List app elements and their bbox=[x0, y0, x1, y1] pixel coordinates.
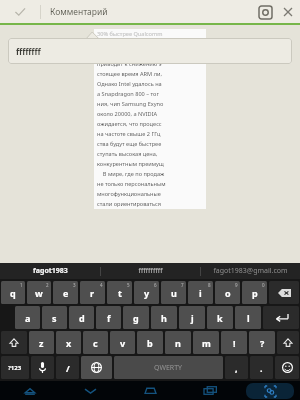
button[interactable]: fagot1983 bbox=[0, 263, 100, 279]
button[interactable]: Key bbox=[275, 356, 299, 379]
staticText: f bbox=[107, 312, 111, 324]
staticText: около 20000, a NVIDIA bbox=[97, 110, 159, 118]
staticText: fagot1983 bbox=[33, 266, 68, 276]
staticText: 8 bbox=[208, 282, 211, 288]
button[interactable]: u bbox=[161, 281, 186, 304]
staticText: e bbox=[63, 287, 69, 299]
button[interactable]: r bbox=[80, 281, 105, 304]
button[interactable]: , bbox=[225, 356, 248, 379]
button[interactable]: a bbox=[15, 306, 40, 329]
staticText: 5 bbox=[127, 282, 130, 288]
staticText: стоящее время ARM ли, bbox=[97, 70, 162, 78]
staticText: o bbox=[225, 287, 231, 299]
button[interactable]: f bbox=[96, 306, 121, 329]
staticText: y bbox=[144, 287, 150, 299]
button[interactable]: ffffffffff bbox=[101, 263, 200, 279]
button[interactable]: z bbox=[29, 331, 54, 354]
button[interactable]: Key bbox=[81, 356, 112, 379]
staticText: / bbox=[66, 362, 70, 374]
button[interactable]: m bbox=[193, 331, 219, 354]
staticText: , bbox=[235, 362, 238, 374]
button[interactable]: Home bbox=[120, 381, 180, 400]
button[interactable]: q bbox=[1, 281, 25, 304]
staticText: m bbox=[202, 337, 211, 349]
staticText: ния, чип Samsung Exyno bbox=[97, 100, 164, 108]
staticText: многофункциональные bbox=[97, 190, 163, 198]
staticText: p bbox=[252, 287, 258, 299]
staticText: u bbox=[171, 287, 177, 299]
button[interactable]: i bbox=[188, 281, 213, 304]
button[interactable]: Key bbox=[31, 356, 54, 379]
button[interactable]: ? bbox=[249, 331, 275, 354]
button[interactable]: o bbox=[215, 281, 240, 304]
staticText: 30% быстрее Qualcomm bbox=[97, 30, 163, 38]
button[interactable]: k bbox=[207, 306, 233, 329]
button[interactable]: Key bbox=[277, 331, 299, 354]
staticText: ?123 bbox=[8, 364, 22, 372]
button[interactable]: j bbox=[179, 306, 205, 329]
button[interactable]: . bbox=[250, 356, 273, 379]
button[interactable]: v bbox=[110, 331, 135, 354]
button[interactable]: l bbox=[235, 306, 261, 329]
staticText: 2 bbox=[46, 282, 49, 288]
staticText: приводит к снижению э bbox=[97, 60, 162, 68]
button[interactable]: Expand bbox=[240, 381, 300, 400]
staticText: a Snapdragon 800 – тог bbox=[97, 90, 159, 98]
staticText: 6 bbox=[154, 282, 157, 288]
staticText: ffffffff bbox=[16, 46, 41, 57]
staticText: b bbox=[147, 337, 153, 349]
button[interactable]: y bbox=[134, 281, 159, 304]
staticText: j bbox=[191, 312, 194, 324]
button[interactable]: n bbox=[165, 331, 191, 354]
button[interactable]: e bbox=[53, 281, 78, 304]
button[interactable]: p bbox=[242, 281, 267, 304]
button[interactable]: Hide keyboard bbox=[0, 381, 60, 400]
staticText: k bbox=[217, 312, 223, 324]
button[interactable]: Recents bbox=[180, 381, 240, 400]
staticText: a bbox=[25, 312, 31, 324]
button[interactable]: Key bbox=[263, 306, 299, 329]
staticText: . bbox=[260, 362, 263, 374]
button[interactable]: x bbox=[56, 331, 81, 354]
staticText: Однако Intel удалось на bbox=[97, 80, 162, 88]
staticText: 1 bbox=[20, 282, 23, 288]
button[interactable]: w bbox=[27, 281, 51, 304]
button[interactable]: g bbox=[123, 306, 149, 329]
staticText: fagot1983@gmail.com bbox=[213, 266, 288, 276]
staticText: конкурентным преимущ bbox=[97, 160, 164, 168]
button[interactable]: / bbox=[56, 356, 79, 379]
button[interactable]: d bbox=[69, 306, 94, 329]
staticText: 0 bbox=[262, 282, 265, 288]
staticText: ffffffffff bbox=[138, 266, 163, 276]
button[interactable]: Back bbox=[60, 381, 120, 400]
staticText: 7 bbox=[181, 282, 184, 288]
staticText: z bbox=[39, 337, 44, 349]
button[interactable]: fagot1983@gmail.com bbox=[201, 263, 300, 279]
button[interactable]: Camera bbox=[254, 1, 276, 23]
button[interactable]: c bbox=[83, 331, 108, 354]
button[interactable]: t bbox=[107, 281, 132, 304]
staticText: ? bbox=[260, 337, 265, 349]
button[interactable]: Done bbox=[0, 0, 40, 23]
staticText: QWERTY bbox=[154, 363, 183, 373]
staticText: s bbox=[52, 312, 57, 324]
staticText: l bbox=[247, 312, 250, 324]
button[interactable]: b bbox=[137, 331, 163, 354]
button[interactable]: s bbox=[42, 306, 67, 329]
staticText: 3 bbox=[73, 282, 76, 288]
staticText: c bbox=[93, 337, 98, 349]
button[interactable]: QWERTY bbox=[114, 356, 223, 379]
button[interactable]: ! bbox=[221, 331, 247, 354]
staticText: h bbox=[161, 312, 167, 324]
button[interactable]: ffffffff bbox=[8, 38, 292, 64]
staticText: n bbox=[175, 337, 181, 349]
button[interactable]: ?123 bbox=[1, 356, 29, 379]
staticText: w bbox=[35, 287, 43, 299]
button[interactable]: Close bbox=[276, 0, 300, 23]
staticText: 4 bbox=[100, 282, 103, 288]
staticText: q bbox=[10, 287, 16, 299]
button[interactable]: Key bbox=[269, 281, 299, 304]
button[interactable]: h bbox=[151, 306, 177, 329]
button[interactable]: Key bbox=[1, 331, 27, 354]
